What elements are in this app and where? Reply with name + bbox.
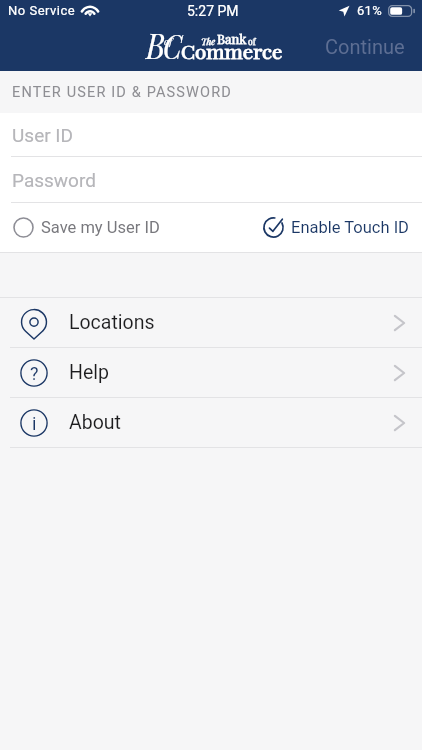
staticText: Locations xyxy=(69,311,155,334)
button[interactable]: User ID xyxy=(0,113,422,156)
staticText: 61% xyxy=(357,3,383,18)
staticText: Enable Touch ID xyxy=(291,218,409,237)
staticText: No Service xyxy=(8,3,76,18)
staticText: Continue xyxy=(325,35,405,58)
staticText: C xyxy=(163,22,182,67)
staticText: 5:27 PM xyxy=(187,3,239,19)
staticText: of xyxy=(164,34,173,47)
staticText: The xyxy=(201,35,216,47)
other: Locations xyxy=(20,311,48,339)
staticText: Help xyxy=(69,361,109,384)
button[interactable]: About xyxy=(0,398,422,447)
button[interactable]: Password xyxy=(0,157,422,202)
staticText: B xyxy=(146,21,166,68)
staticText: Commerce xyxy=(181,38,282,63)
staticText: i xyxy=(32,413,37,434)
staticText: of xyxy=(248,36,256,47)
staticText: About xyxy=(69,411,121,434)
other: Help xyxy=(20,359,48,387)
button[interactable]: Help xyxy=(0,348,422,397)
staticText: User ID xyxy=(12,124,73,146)
staticText: Save my User ID xyxy=(41,218,160,237)
button[interactable]: Continue xyxy=(311,24,422,69)
staticText: Password xyxy=(12,169,96,191)
button[interactable]: Locations xyxy=(0,298,422,347)
button[interactable]: Save my User ID xyxy=(0,210,168,245)
staticText: ? xyxy=(30,363,39,384)
button[interactable]: Enable Touch ID xyxy=(255,210,422,245)
staticText: ENTER USER ID & PASSWORD xyxy=(12,84,233,101)
staticText: Bank xyxy=(217,30,247,47)
other: About xyxy=(20,409,48,437)
